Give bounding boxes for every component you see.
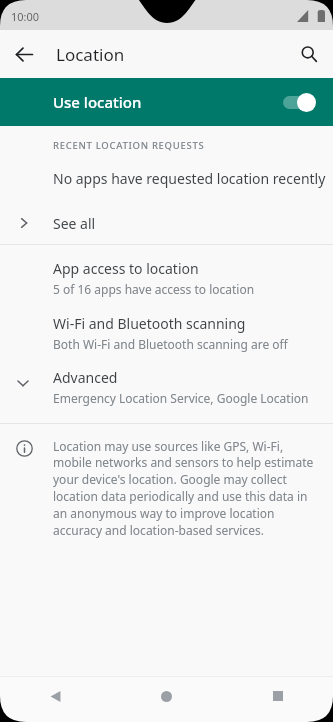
staticText: Wi-Fi and Bluetooth scanning: [53, 314, 246, 333]
staticText: Location: [56, 43, 125, 66]
staticText: App access to location: [53, 259, 199, 278]
button[interactable]: Home: [111, 676, 222, 716]
button[interactable]: Back: [0, 676, 111, 716]
button[interactable]: See all: [0, 204, 333, 242]
button[interactable]: Wi-Fi and Bluetooth scanning: [0, 297, 333, 352]
staticText: See all: [53, 214, 96, 233]
staticText: Both Wi-Fi and Bluetooth scanning are of…: [53, 336, 288, 352]
staticText: RECENT LOCATION REQUESTS: [53, 139, 205, 152]
staticText: Emergency Location Service, Google Locat…: [53, 390, 317, 406]
staticText: Use location: [53, 92, 142, 112]
button[interactable]: App access to location: [0, 245, 333, 297]
button[interactable]: Back: [0, 30, 48, 78]
staticText: Advanced: [53, 368, 118, 387]
staticText: No apps have requested location recently: [53, 169, 326, 188]
staticText: 5 of 16 apps have access to location: [53, 281, 255, 297]
button[interactable]: Use location: [0, 78, 333, 126]
staticText: 10:00: [11, 9, 40, 24]
button[interactable]: Search: [285, 30, 333, 78]
staticText: Location may use sources like GPS, Wi-Fi…: [53, 438, 317, 539]
button[interactable]: Advanced: [0, 352, 333, 406]
button[interactable]: Recent apps: [222, 676, 333, 716]
